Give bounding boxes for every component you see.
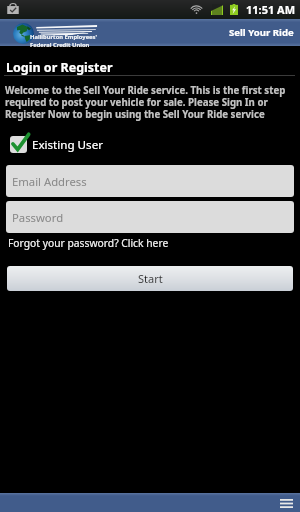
button[interactable]: Start [7, 266, 293, 291]
staticText: Login or Register [6, 59, 113, 76]
button[interactable]: Email Address [6, 165, 294, 197]
staticText: Welcome to the Sell Your Ride service. T… [5, 84, 295, 121]
staticText: Email Address [12, 174, 87, 189]
button[interactable]: Existing User [10, 136, 103, 153]
button[interactable]: Menu [278, 495, 294, 511]
staticText: Sell Your Ride [229, 26, 294, 39]
staticText: Halliburton Employees' [30, 33, 98, 41]
staticText: Password [12, 210, 64, 225]
button[interactable]: Password [6, 201, 294, 233]
button[interactable]: Forgot your password? Click here [8, 236, 169, 250]
staticText: Start [138, 271, 163, 286]
button[interactable]: Halliburton Employees Federal Credit Uni… [13, 20, 98, 45]
staticText: Existing User [32, 137, 103, 153]
staticText: 11:51 AM [246, 2, 296, 17]
staticText: Federal Credit Union [30, 41, 90, 49]
